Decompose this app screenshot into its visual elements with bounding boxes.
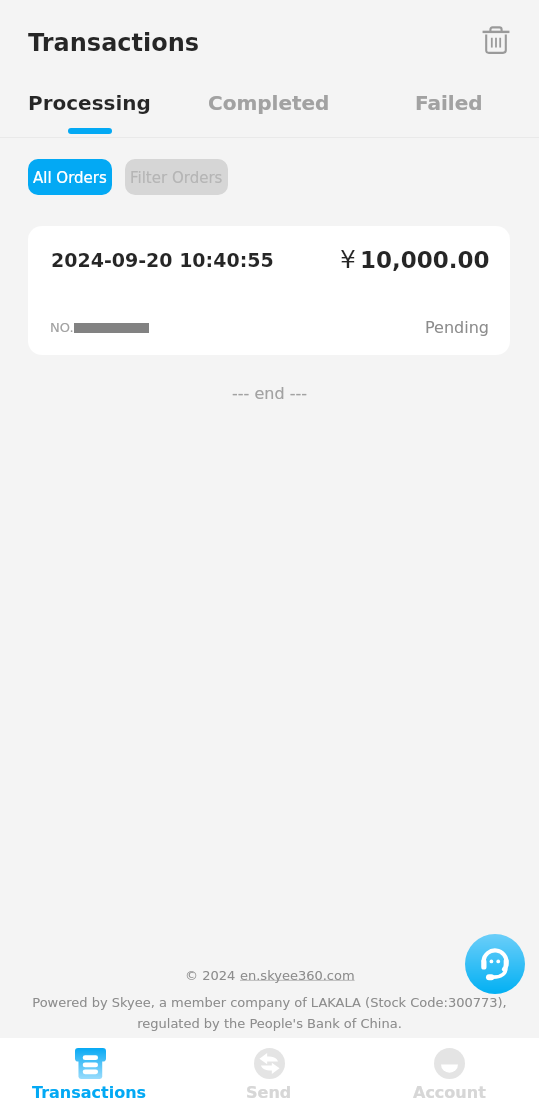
staticText: Powered by Skyee, a member company of LA… (0, 995, 539, 1031)
button[interactable]: Account (359, 1038, 539, 1102)
button[interactable]: All Orders (28, 159, 112, 195)
button[interactable]: Completed (179, 80, 359, 128)
staticText: Pending (425, 318, 489, 337)
button[interactable]: 2024-09-20 10:40:55 (28, 226, 510, 355)
staticText: Transactions (32, 1083, 147, 1102)
staticText: 10,000.00 (360, 247, 490, 274)
staticText: Transactions (28, 29, 200, 57)
staticText: 2024-09-20 10:40:55 (51, 249, 274, 271)
staticText: ¥ (340, 245, 356, 274)
staticText: en.skyee360.com (240, 968, 355, 983)
staticText: All Orders (33, 169, 107, 186)
staticText: Account (413, 1083, 486, 1102)
staticText: Failed (415, 91, 483, 114)
button[interactable]: Failed (359, 80, 539, 128)
button[interactable]: Filter Orders (125, 159, 228, 195)
button[interactable]: Delete (478, 22, 514, 58)
button[interactable]: © 2024 (185, 968, 355, 983)
button[interactable]: Transactions (0, 1038, 179, 1102)
button[interactable]: Processing (0, 80, 179, 134)
staticText: Processing (28, 91, 151, 114)
button[interactable]: Send (179, 1038, 359, 1102)
staticText: Filter Orders (130, 169, 223, 186)
staticText: Send (246, 1083, 292, 1102)
button[interactable]: Customer service (465, 934, 525, 994)
staticText: NO. (50, 320, 74, 335)
staticText: Completed (208, 91, 330, 114)
staticText: --- end --- (0, 384, 539, 403)
staticText: © 2024 (185, 968, 240, 983)
